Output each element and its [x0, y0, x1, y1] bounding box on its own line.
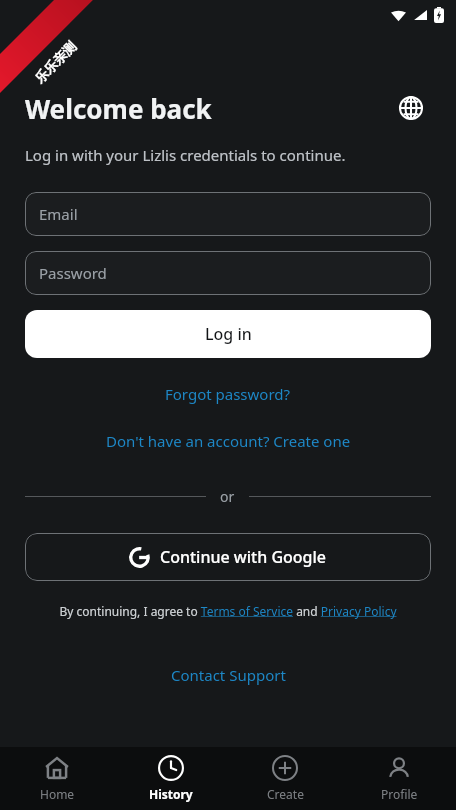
button[interactable]: Contact Support — [0, 659, 456, 691]
button[interactable]: Log in — [25, 310, 431, 358]
button[interactable]: By continuing, I agree to Terms of Servi… — [18, 603, 438, 619]
staticText: Create — [267, 786, 304, 802]
staticText: or — [220, 487, 235, 506]
staticText: Profile — [381, 786, 418, 802]
button[interactable]: Forgot password? — [0, 378, 456, 410]
button[interactable]: Continue with Google — [25, 533, 431, 581]
staticText: 乐乐亲测 — [31, 38, 79, 86]
button[interactable]: History — [114, 747, 228, 810]
button[interactable]: Email — [25, 192, 431, 236]
staticText: Contact Support — [171, 665, 286, 685]
button[interactable]: Don't have an account? Create one — [0, 425, 456, 457]
button[interactable]: Change language — [391, 88, 431, 128]
button[interactable]: Create — [228, 747, 342, 810]
button[interactable]: Home — [0, 747, 114, 810]
button[interactable]: Profile — [342, 747, 456, 810]
staticText: Forgot password? — [165, 384, 291, 404]
staticText: History — [149, 786, 193, 802]
staticText: Log in with your Lizlis credentials to c… — [25, 145, 346, 165]
staticText: Home — [40, 786, 75, 802]
staticText: Log in — [205, 323, 252, 345]
staticText: Continue with Google — [160, 546, 326, 568]
staticText: Don't have an account? Create one — [106, 431, 351, 451]
staticText: Email — [39, 204, 78, 224]
staticText: Password — [39, 263, 107, 283]
staticText: Welcome back — [25, 91, 212, 126]
staticText: By continuing, I agree to Terms of Servi… — [59, 603, 397, 619]
button[interactable]: Password — [25, 251, 431, 295]
